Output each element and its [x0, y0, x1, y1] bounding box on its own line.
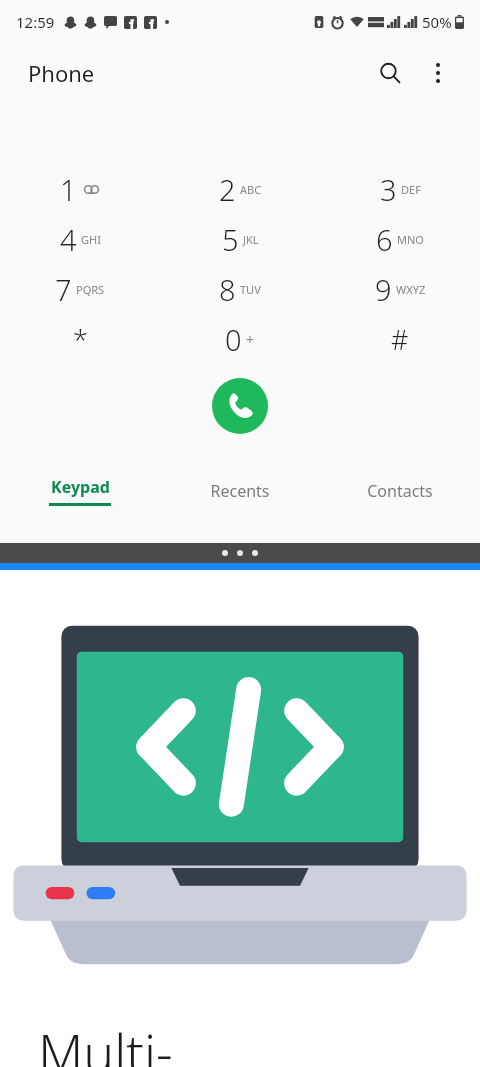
- staticText: PQRS: [76, 282, 105, 297]
- button[interactable]: #: [320, 314, 480, 364]
- staticText: +: [246, 330, 255, 349]
- staticText: GHI: [81, 232, 101, 247]
- staticText: 6: [376, 220, 393, 259]
- button[interactable]: 3: [320, 164, 480, 214]
- button[interactable]: Call: [212, 378, 268, 434]
- staticText: Phone: [28, 58, 95, 88]
- staticText: 1: [60, 170, 77, 209]
- staticText: ABC: [240, 182, 262, 197]
- staticText: Keypad: [51, 476, 110, 498]
- staticText: Contacts: [367, 480, 433, 502]
- button[interactable]: 9: [320, 264, 480, 314]
- staticText: Recents: [210, 480, 270, 502]
- staticText: 0: [225, 320, 242, 359]
- staticText: TUV: [240, 282, 261, 297]
- staticText: Multi-: [38, 1016, 173, 1067]
- staticText: 5: [222, 220, 239, 259]
- staticText: 2: [219, 170, 236, 209]
- button[interactable]: *: [0, 314, 160, 364]
- button[interactable]: 1: [0, 164, 160, 214]
- staticText: MNO: [397, 232, 424, 247]
- button[interactable]: Contacts: [320, 465, 480, 517]
- button[interactable]: 6: [320, 214, 480, 264]
- staticText: *: [73, 321, 88, 358]
- button[interactable]: Recents: [160, 465, 320, 517]
- staticText: 7: [55, 270, 72, 309]
- staticText: 50%: [422, 12, 452, 32]
- button[interactable]: 5: [160, 214, 320, 264]
- staticText: 8: [219, 270, 236, 309]
- button[interactable]: 2: [160, 164, 320, 214]
- button[interactable]: 0: [160, 314, 320, 364]
- staticText: WXYZ: [396, 282, 426, 297]
- staticText: JKL: [243, 232, 259, 247]
- staticText: 4: [60, 220, 77, 259]
- staticText: #: [391, 321, 409, 358]
- staticText: 12:59: [16, 12, 55, 32]
- button[interactable]: 8: [160, 264, 320, 314]
- button[interactable]: 4: [0, 214, 160, 264]
- button[interactable]: Keypad: [0, 465, 160, 517]
- staticText: 9: [375, 270, 392, 309]
- staticText: DEF: [401, 182, 421, 197]
- button[interactable]: Search: [366, 49, 414, 97]
- button[interactable]: 7: [0, 264, 160, 314]
- button[interactable]: More options: [414, 49, 462, 97]
- staticText: 3: [380, 170, 397, 209]
